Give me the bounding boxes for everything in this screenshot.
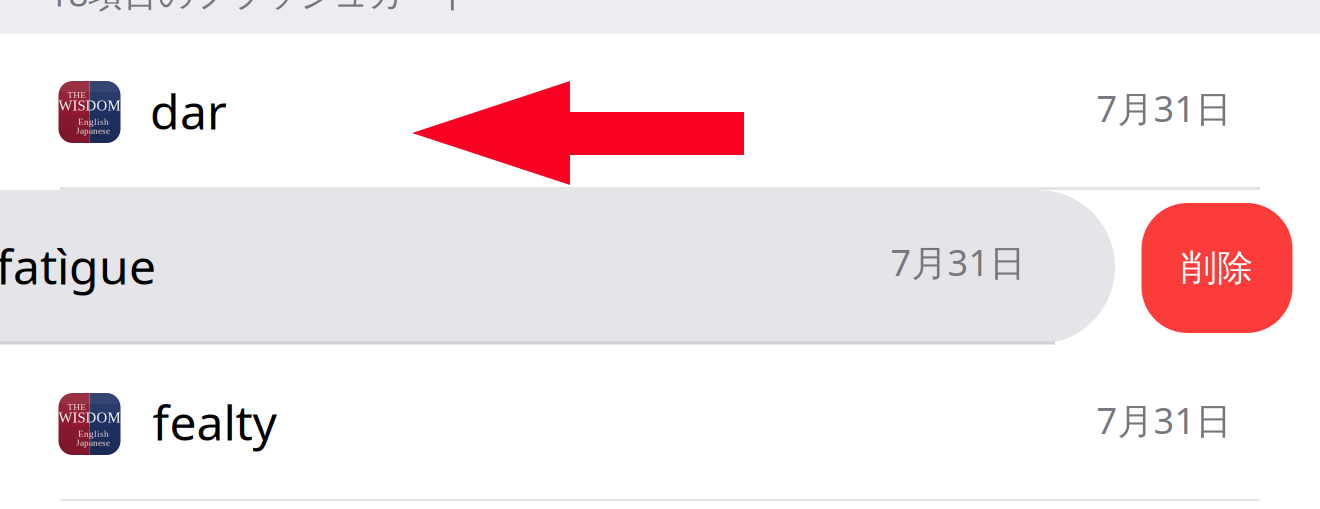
button[interactable]: fatìgue	[0, 190, 1115, 344]
staticText: 18項目のフラッシュカード	[48, 0, 473, 16]
staticText: fealty	[152, 390, 276, 454]
staticText: Japanese	[76, 125, 110, 136]
staticText: 7月31日	[1096, 84, 1231, 132]
staticText: 7月31日	[1096, 396, 1231, 444]
staticText: THE	[67, 402, 86, 412]
staticText: fatìgue	[0, 234, 156, 298]
staticText: dar	[150, 79, 227, 143]
button[interactable]: THE	[0, 33, 1320, 186]
staticText: 削除	[1181, 246, 1253, 290]
staticText: English	[78, 116, 109, 127]
staticText: 7月31日	[890, 238, 1025, 286]
button[interactable]: THE	[0, 348, 1320, 504]
button[interactable]: 削除	[1141, 203, 1292, 333]
staticText: WISDOM	[58, 97, 120, 114]
staticText: THE	[67, 90, 86, 100]
staticText: Japanese	[76, 437, 110, 448]
staticText: WISDOM	[58, 409, 120, 426]
staticText: English	[78, 428, 109, 439]
